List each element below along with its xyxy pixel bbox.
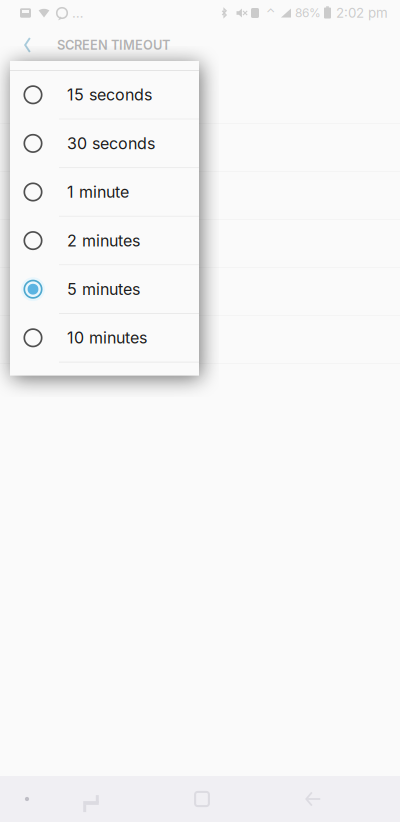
- staticText: SCREEN TIMEOUT: [57, 37, 170, 53]
- staticText: ⌃: [266, 6, 275, 20]
- staticText: …: [72, 5, 84, 21]
- staticText: 5 minutes: [67, 279, 140, 299]
- button[interactable]: Back: [4, 26, 51, 64]
- button[interactable]: Home: [172, 776, 232, 822]
- staticText: 1 minute: [67, 182, 129, 202]
- button[interactable]: Recent apps: [61, 776, 121, 822]
- staticText: 86%: [295, 6, 321, 20]
- staticText: 10 minutes: [67, 328, 147, 347]
- staticText: 30 seconds: [67, 134, 155, 153]
- button[interactable]: 5 minutes: [10, 265, 199, 313]
- staticText: 15 seconds: [67, 85, 152, 104]
- button[interactable]: 15 seconds: [10, 71, 199, 119]
- staticText: 2:02 pm: [336, 5, 388, 21]
- button[interactable]: 2 minutes: [10, 217, 199, 264]
- button[interactable]: 10 minutes: [10, 314, 199, 362]
- staticText: 2 minutes: [67, 231, 140, 250]
- button[interactable]: Show keyboard: [0, 776, 54, 822]
- button[interactable]: 1 minute: [10, 168, 199, 216]
- button[interactable]: 30 seconds: [10, 120, 199, 167]
